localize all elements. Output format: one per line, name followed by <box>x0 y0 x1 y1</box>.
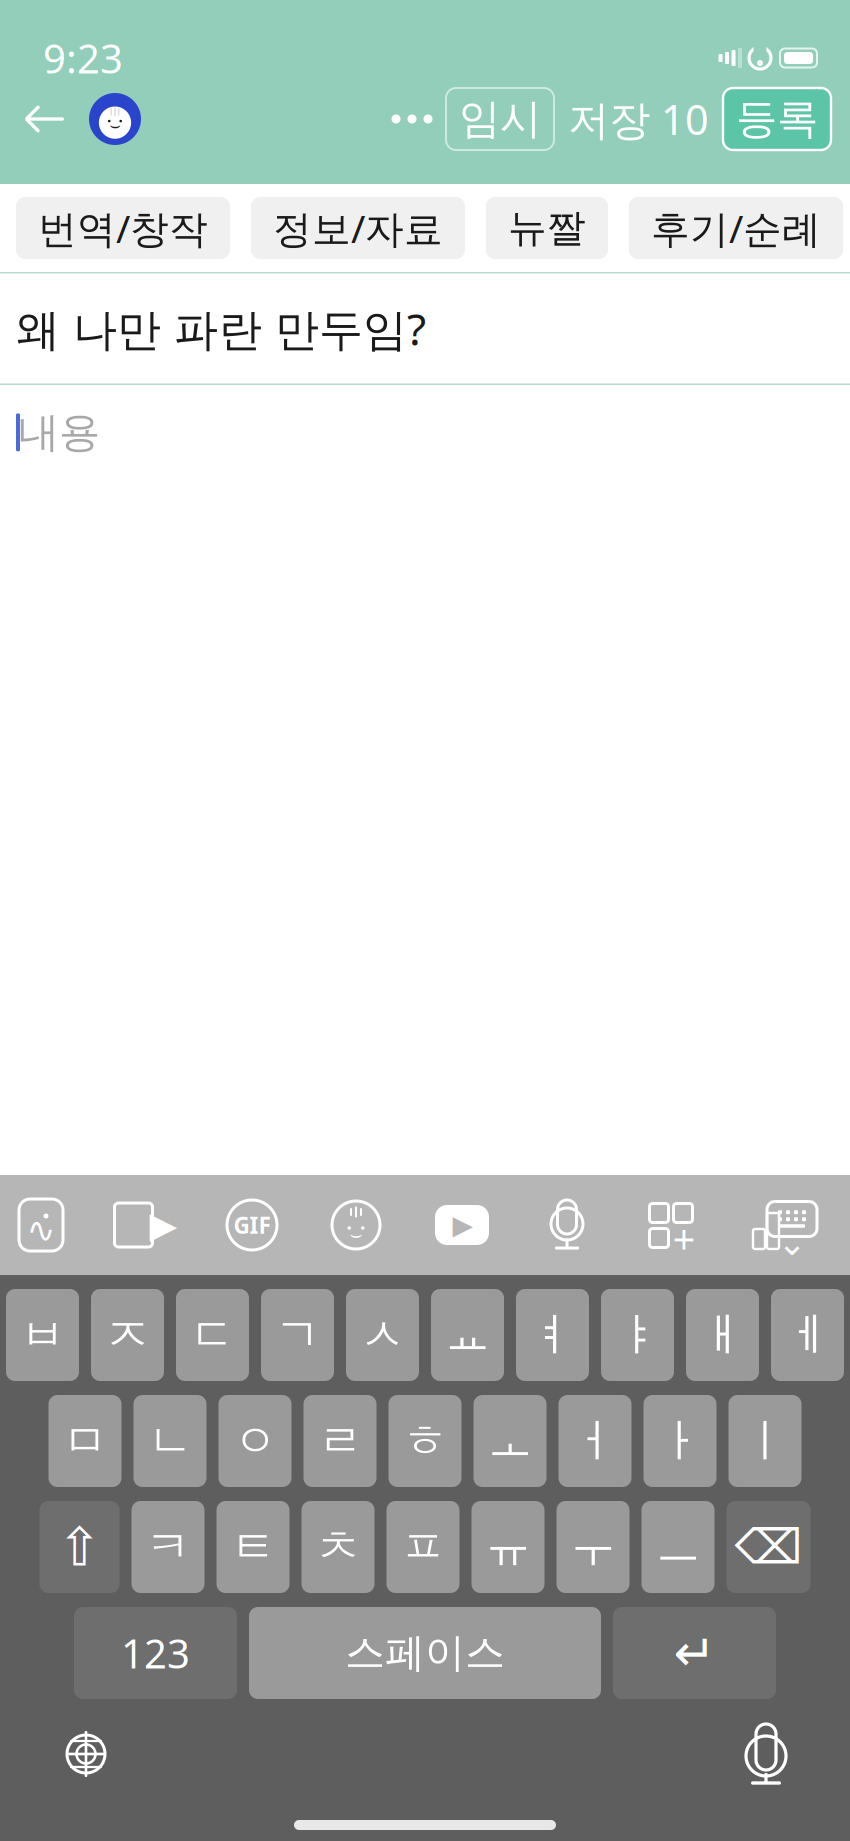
button[interactable]: 번역/창작 <box>16 197 230 259</box>
staticText: ㅣ <box>742 1413 787 1469</box>
button[interactable]: ㄴ <box>133 1395 206 1487</box>
staticText: ㅛ <box>445 1307 490 1363</box>
button[interactable]: ㅜ <box>556 1501 629 1593</box>
button[interactable]: 정보/자료 <box>251 197 465 259</box>
staticText: 임시 <box>459 94 541 144</box>
button[interactable]: ㅗ <box>473 1395 546 1487</box>
button[interactable]: ㄹ <box>303 1395 376 1487</box>
staticText: ㅁ <box>62 1413 107 1469</box>
button[interactable]: 임시 <box>446 88 554 150</box>
staticText: ㅑ <box>615 1307 660 1363</box>
staticText: ㅏ <box>657 1413 702 1469</box>
button[interactable]: Back <box>23 99 67 139</box>
staticText: ㅂ <box>20 1307 65 1363</box>
staticText: ㅈ <box>105 1307 150 1363</box>
staticText: 등록 <box>736 94 818 144</box>
staticText: ㅓ <box>572 1413 617 1469</box>
button[interactable]: Add photo <box>15 1197 67 1253</box>
staticText: ㅐ <box>700 1307 745 1363</box>
staticText: ㅅ <box>360 1307 405 1363</box>
button[interactable]: Add more <box>643 1197 699 1253</box>
button[interactable]: ㅡ <box>641 1501 714 1593</box>
button[interactable]: ㅑ <box>601 1289 674 1381</box>
staticText: ㅕ <box>530 1307 575 1363</box>
button[interactable]: ㅋ <box>131 1501 204 1593</box>
button[interactable]: Add GIF <box>225 1197 279 1253</box>
button[interactable]: ㅐ <box>686 1289 759 1381</box>
button[interactable]: Add video <box>117 1197 175 1253</box>
button[interactable]: More options <box>378 97 446 141</box>
button[interactable]: ㅈ <box>91 1289 164 1381</box>
button[interactable]: Dictation <box>735 1721 797 1787</box>
staticText: ⌄ <box>777 1223 806 1263</box>
staticText: ㄹ <box>317 1413 362 1469</box>
button[interactable]: Record voice <box>541 1197 593 1253</box>
button[interactable]: Profile <box>67 93 149 145</box>
button[interactable]: Next keyboard <box>53 1723 119 1785</box>
staticText: 번역/창작 <box>38 202 208 254</box>
staticText: 내용 <box>18 407 100 458</box>
staticText: 123 <box>121 1626 190 1679</box>
staticText: ⌫ <box>734 1520 802 1574</box>
button[interactable]: ㅎ <box>388 1395 461 1487</box>
button[interactable]: ㅌ <box>216 1501 289 1593</box>
staticText: ⇧ <box>57 1517 102 1577</box>
staticText: GIF <box>233 1210 270 1240</box>
button[interactable]: ㅓ <box>558 1395 631 1487</box>
staticText: ▶ <box>452 1210 473 1240</box>
staticText: ㅌ <box>230 1519 275 1575</box>
button[interactable]: Add sticker <box>329 1197 383 1253</box>
button[interactable]: 스페이스 <box>249 1607 601 1699</box>
button[interactable]: ㅅ <box>346 1289 419 1381</box>
button[interactable]: Add YouTube video <box>433 1197 491 1253</box>
button[interactable]: ㅔ <box>771 1289 844 1381</box>
button[interactable]: 등록 <box>723 88 831 150</box>
staticText: 정보/자료 <box>273 202 443 254</box>
button[interactable]: 뉴짤 <box>486 197 608 259</box>
staticText: 스페이스 <box>345 1628 505 1677</box>
button[interactable]: ㅊ <box>301 1501 374 1593</box>
staticText: 9:23 <box>43 31 123 84</box>
staticText: 왜 나만 파란 만두임? <box>16 299 426 358</box>
staticText: ㄱ <box>275 1307 320 1363</box>
button[interactable]: ㅁ <box>48 1395 121 1487</box>
button[interactable]: 후기/순례 <box>629 197 843 259</box>
button[interactable]: ㄱ <box>261 1289 334 1381</box>
button[interactable]: ㅏ <box>643 1395 716 1487</box>
staticText: ㅜ <box>570 1519 615 1575</box>
staticText: ⌣ <box>349 1225 362 1245</box>
button[interactable]: Return <box>613 1607 776 1699</box>
button[interactable]: ㅣ <box>728 1395 801 1487</box>
button[interactable]: ㅛ <box>431 1289 504 1381</box>
staticText: ⌣ <box>109 117 120 134</box>
button[interactable]: 저장 10 <box>554 88 723 150</box>
staticText: 후기/순례 <box>651 202 821 254</box>
button[interactable]: ㅇ <box>218 1395 291 1487</box>
button[interactable]: Shift <box>39 1501 119 1593</box>
staticText: ㅋ <box>145 1519 190 1575</box>
button[interactable]: Delete <box>726 1501 810 1593</box>
staticText: ▶ <box>149 1205 177 1245</box>
button[interactable]: Hide keyboard <box>749 1197 835 1253</box>
button[interactable]: ㄷ <box>176 1289 249 1381</box>
staticText: ㅎ <box>402 1413 447 1469</box>
staticText: 저장 10 <box>568 92 709 146</box>
staticText: ㅡ <box>655 1519 700 1575</box>
button[interactable]: ㅠ <box>471 1501 544 1593</box>
staticText: ㄴ <box>147 1413 192 1469</box>
staticText: ㄷ <box>190 1307 235 1363</box>
staticText: ㅠ <box>485 1519 530 1575</box>
button[interactable]: ㅂ <box>6 1289 79 1381</box>
staticText: 뉴짤 <box>508 204 586 252</box>
staticText: ㅗ <box>487 1413 532 1469</box>
staticText: ㅇ <box>232 1413 277 1469</box>
staticText: ㅔ <box>785 1307 830 1363</box>
button[interactable]: ㅍ <box>386 1501 459 1593</box>
staticText: ∿ <box>26 1210 55 1250</box>
button[interactable]: ㅕ <box>516 1289 589 1381</box>
staticText: + <box>672 1211 695 1264</box>
staticText: ㅍ <box>400 1519 445 1575</box>
button[interactable]: 123 <box>74 1607 237 1699</box>
staticText: ㅊ <box>315 1519 360 1575</box>
staticText: ↵ <box>673 1624 715 1682</box>
